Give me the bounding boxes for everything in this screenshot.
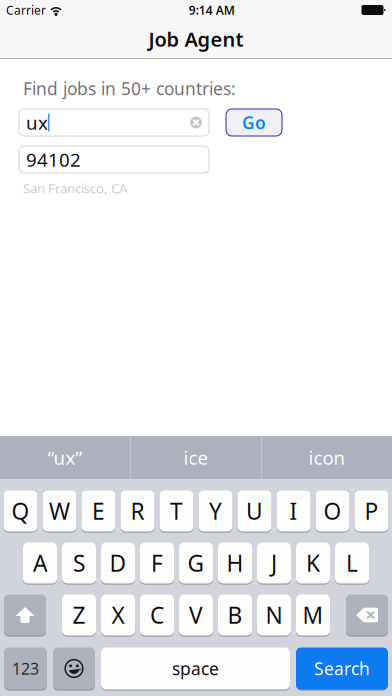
staticText: San Francisco, CA bbox=[23, 179, 128, 197]
staticText: 94102 bbox=[26, 147, 81, 172]
staticText: O bbox=[323, 496, 341, 526]
button[interactable]: I bbox=[276, 490, 310, 532]
staticText: F bbox=[151, 548, 163, 578]
button[interactable]: N bbox=[257, 594, 291, 636]
staticText: Z bbox=[72, 600, 85, 630]
button[interactable]: M bbox=[296, 594, 330, 636]
staticText: Carrier bbox=[6, 2, 46, 18]
button[interactable]: S bbox=[62, 542, 96, 584]
button[interactable]: 123 bbox=[4, 647, 47, 690]
button[interactable]: E bbox=[81, 490, 115, 532]
staticText: Find jobs in 50+ countries: bbox=[23, 77, 236, 100]
button[interactable]: G bbox=[179, 542, 213, 584]
staticText: D bbox=[109, 548, 126, 578]
staticText: W bbox=[49, 496, 70, 526]
staticText: B bbox=[227, 600, 242, 630]
button[interactable]: V bbox=[179, 594, 213, 636]
button[interactable]: R bbox=[120, 490, 154, 532]
staticText: T bbox=[170, 496, 183, 526]
button[interactable]: O bbox=[315, 490, 349, 532]
button[interactable]: Y bbox=[198, 490, 232, 532]
button[interactable]: Emoji bbox=[53, 647, 95, 690]
staticText: G bbox=[187, 548, 204, 578]
staticText: V bbox=[189, 600, 203, 630]
staticText: M bbox=[302, 600, 323, 630]
button[interactable]: P bbox=[354, 490, 388, 532]
staticText: U bbox=[246, 496, 263, 526]
staticText: 123 bbox=[12, 658, 39, 679]
staticText: space bbox=[172, 657, 219, 680]
staticText: K bbox=[306, 548, 320, 578]
button[interactable]: H bbox=[218, 542, 252, 584]
button[interactable]: Search bbox=[296, 647, 388, 690]
staticText: N bbox=[265, 600, 282, 630]
button[interactable]: Delete bbox=[346, 594, 388, 636]
staticText: Y bbox=[209, 496, 222, 526]
staticText: ice bbox=[183, 445, 208, 470]
staticText: ux bbox=[26, 110, 48, 135]
button[interactable]: Q bbox=[3, 490, 37, 532]
staticText: icon bbox=[308, 445, 345, 470]
staticText: Q bbox=[11, 496, 29, 526]
staticText: I bbox=[289, 496, 297, 526]
staticText: H bbox=[226, 548, 243, 578]
button[interactable]: J bbox=[257, 542, 291, 584]
button[interactable]: “ux” bbox=[0, 436, 130, 478]
button[interactable]: Shift bbox=[4, 594, 46, 636]
staticText: L bbox=[346, 548, 358, 578]
button[interactable]: icon bbox=[262, 436, 392, 478]
staticText: Search bbox=[314, 657, 370, 680]
staticText: P bbox=[364, 496, 378, 526]
staticText: Go bbox=[242, 111, 266, 134]
button[interactable]: X bbox=[101, 594, 135, 636]
button[interactable]: Go bbox=[226, 109, 282, 136]
staticText: A bbox=[33, 548, 47, 578]
button[interactable]: space bbox=[101, 647, 290, 690]
staticText: C bbox=[150, 600, 164, 630]
button[interactable]: W bbox=[42, 490, 76, 532]
button[interactable]: K bbox=[296, 542, 330, 584]
button[interactable]: Z bbox=[62, 594, 96, 636]
staticText: R bbox=[130, 496, 144, 526]
staticText: J bbox=[271, 548, 277, 578]
button[interactable]: ice bbox=[131, 436, 261, 478]
staticText: Job Agent bbox=[148, 26, 243, 52]
staticText: S bbox=[73, 548, 85, 578]
button[interactable]: A bbox=[23, 542, 57, 584]
staticText: X bbox=[111, 600, 124, 630]
staticText: “ux” bbox=[47, 445, 82, 470]
button[interactable]: L bbox=[335, 542, 369, 584]
staticText: E bbox=[92, 496, 105, 526]
button[interactable]: T bbox=[159, 490, 193, 532]
button[interactable]: B bbox=[218, 594, 252, 636]
button[interactable]: U bbox=[237, 490, 271, 532]
button[interactable]: C bbox=[140, 594, 174, 636]
button[interactable]: D bbox=[101, 542, 135, 584]
staticText: 9:14 AM bbox=[189, 2, 235, 18]
button[interactable]: F bbox=[140, 542, 174, 584]
